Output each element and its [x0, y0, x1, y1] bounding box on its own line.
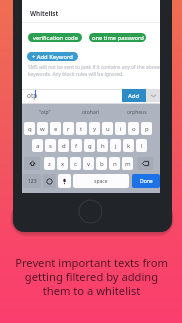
button[interactable]: m — [122, 157, 133, 170]
staticText: "otp" — [39, 109, 51, 116]
staticText: Done — [140, 178, 153, 185]
staticText: h — [101, 142, 105, 150]
staticText: f — [75, 142, 78, 150]
staticText: n — [113, 160, 117, 168]
staticText: + Add Keyword — [32, 53, 73, 61]
button[interactable]: b — [96, 157, 107, 170]
button[interactable]: w — [37, 122, 48, 135]
button[interactable]: h — [97, 139, 108, 152]
button[interactable]: otohari — [68, 104, 114, 120]
staticText: t — [80, 125, 83, 133]
button[interactable]: verification code — [28, 33, 82, 42]
button[interactable]: a — [32, 139, 43, 152]
staticText: m — [125, 160, 131, 168]
button[interactable]: 123 — [23, 174, 41, 188]
staticText: r — [67, 125, 70, 133]
button[interactable]: Emoji — [43, 174, 56, 188]
button[interactable]: + Add Keyword — [27, 52, 78, 61]
button[interactable]: o — [128, 122, 139, 135]
staticText: i — [120, 125, 122, 133]
staticText: x — [61, 160, 65, 168]
button[interactable]: f — [71, 139, 82, 152]
button[interactable]: n — [109, 157, 120, 170]
staticText: b — [100, 160, 104, 168]
staticText: otp — [27, 91, 38, 100]
staticText: c — [74, 160, 77, 168]
button[interactable]: t — [76, 122, 87, 135]
staticText: SMS will not be sent to junk if it conta… — [28, 64, 161, 77]
staticText: p — [145, 125, 149, 133]
staticText: 123 — [28, 178, 37, 185]
staticText: orpheus — [127, 109, 147, 116]
button[interactable]: z — [44, 157, 55, 170]
staticText: verification code — [33, 34, 78, 42]
button[interactable]: k — [123, 139, 134, 152]
button[interactable]: l — [136, 139, 147, 152]
staticText: k — [127, 142, 131, 150]
button[interactable]: c — [70, 157, 81, 170]
button[interactable]: e — [50, 122, 61, 135]
button[interactable]: Dictate — [58, 174, 71, 188]
button[interactable]: space — [73, 174, 129, 188]
button[interactable]: g — [84, 139, 95, 152]
staticText: u — [106, 125, 110, 133]
button[interactable]: Show keyword suggestions — [146, 89, 160, 102]
button[interactable]: i — [115, 122, 126, 135]
staticText: Add — [128, 92, 140, 100]
staticText: space — [94, 178, 108, 185]
staticText: y — [93, 125, 97, 133]
button[interactable]: one time password — [89, 33, 146, 42]
staticText: o — [132, 125, 136, 133]
staticText: d — [62, 142, 66, 150]
staticText: l — [141, 142, 143, 150]
staticText: w — [40, 125, 45, 133]
staticText: g — [88, 142, 92, 150]
button[interactable]: q — [24, 122, 35, 135]
button[interactable]: Shift — [24, 157, 40, 170]
staticText: e — [54, 125, 58, 133]
button[interactable]: x — [57, 157, 68, 170]
button[interactable]: s — [45, 139, 56, 152]
button[interactable]: d — [58, 139, 69, 152]
button[interactable]: Add — [122, 89, 146, 102]
button[interactable]: j — [110, 139, 121, 152]
staticText: Prevent important texts from getting fil… — [15, 255, 168, 298]
button[interactable]: orpheus — [114, 104, 160, 120]
staticText: Whitelist — [30, 9, 59, 18]
button[interactable]: Backspace — [137, 157, 153, 170]
staticText: s — [49, 142, 52, 150]
button[interactable]: y — [89, 122, 100, 135]
staticText: q — [28, 125, 32, 133]
staticText: j — [115, 142, 117, 150]
staticText: a — [36, 142, 40, 150]
button[interactable]: "otp" — [22, 104, 68, 120]
staticText: v — [87, 160, 91, 168]
staticText: z — [48, 160, 51, 168]
staticText: one time password — [92, 34, 144, 42]
button[interactable]: p — [141, 122, 152, 135]
button[interactable]: Done — [132, 174, 160, 188]
button[interactable]: v — [83, 157, 94, 170]
button[interactable]: r — [63, 122, 74, 135]
staticText: otohari — [82, 109, 100, 116]
button[interactable]: u — [102, 122, 113, 135]
